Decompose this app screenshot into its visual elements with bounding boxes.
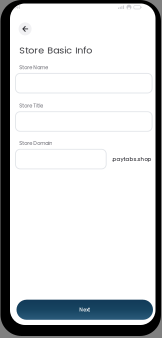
staticText: Store Basic Info [19,43,92,57]
staticText: Store Name [19,64,48,71]
button[interactable]: Back [19,22,32,35]
staticText: Next [79,306,90,313]
staticText: Store Domain [19,140,52,147]
button[interactable]: Next [16,300,153,320]
staticText: Store Title [19,102,43,109]
staticText: .paytabs.shop [111,155,151,163]
staticText: 9:41 [11,4,20,11]
